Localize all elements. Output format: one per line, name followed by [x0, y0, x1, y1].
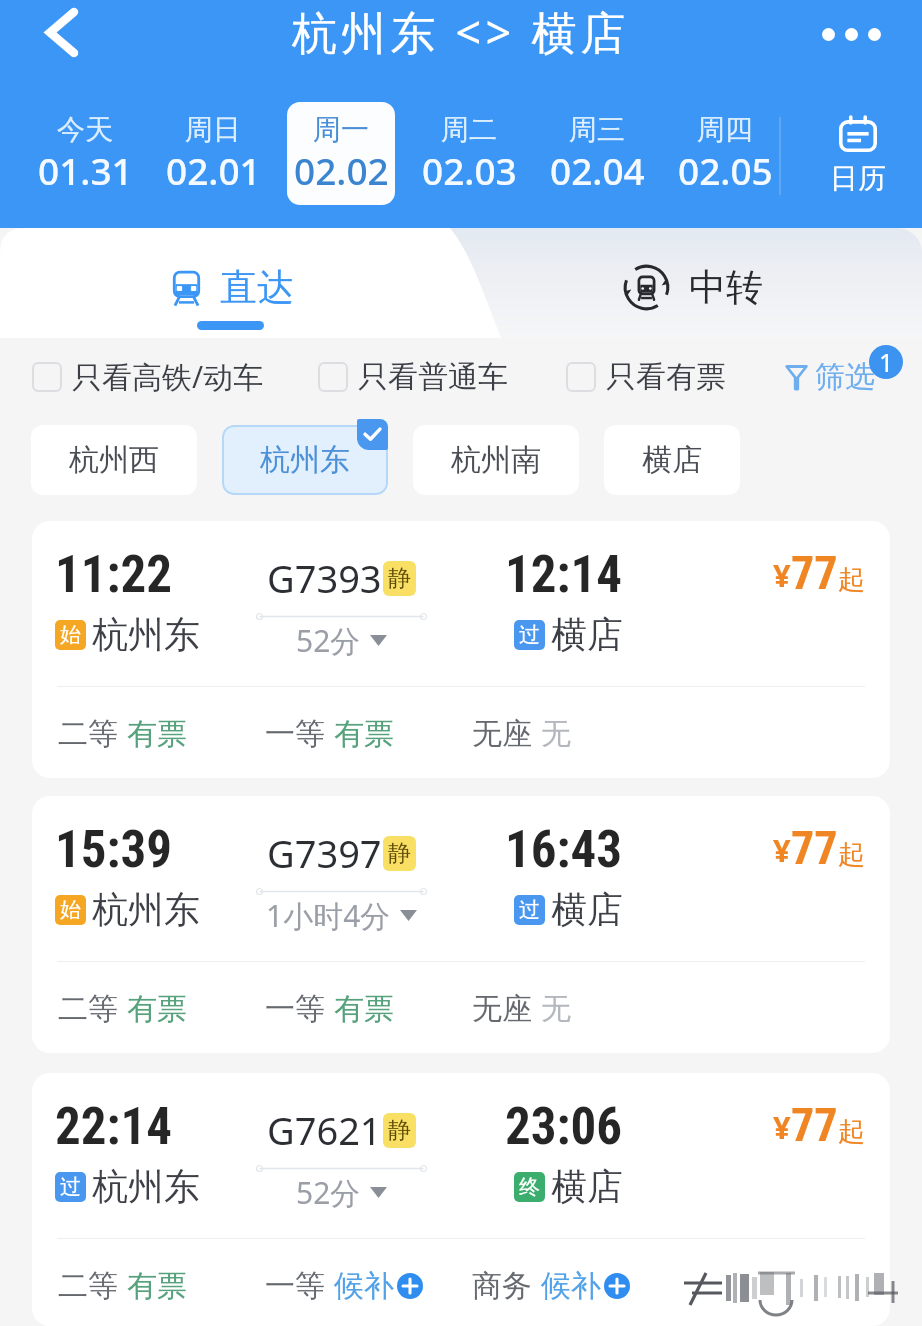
- staticText: 静: [388, 1116, 411, 1145]
- button[interactable]: 一等: [265, 1267, 423, 1305]
- staticText: 01.31: [38, 145, 133, 195]
- button[interactable]: 直达: [0, 228, 461, 338]
- staticText: 周日: [185, 112, 241, 147]
- staticText: ¥: [773, 1106, 791, 1148]
- button[interactable]: 周一: [287, 102, 395, 205]
- staticText: 22:14: [55, 1097, 173, 1157]
- staticText: 静: [388, 564, 411, 593]
- button[interactable]: 只看普通车: [318, 358, 508, 396]
- staticText: 一等: [265, 990, 325, 1028]
- button[interactable]: 中转: [461, 228, 922, 338]
- staticText: 周二: [441, 112, 497, 147]
- staticText: 02.03: [422, 145, 517, 195]
- button[interactable]: 杭州西: [31, 425, 197, 495]
- button[interactable]: 只看高铁/动车: [32, 356, 264, 397]
- staticText: 02.02: [294, 145, 389, 195]
- staticText: 只看高铁/动车: [72, 356, 264, 397]
- staticText: 无座: [472, 715, 532, 753]
- button[interactable]: Calendar: [815, 117, 901, 196]
- staticText: 今天: [57, 112, 113, 147]
- staticText: 筛选: [815, 358, 875, 396]
- staticText: 77: [791, 821, 838, 875]
- staticText: 杭州东 <> 横店: [292, 1, 630, 62]
- button[interactable]: More options: [812, 0, 890, 70]
- staticText: 11:22: [55, 545, 173, 605]
- staticText: 杭州东: [260, 441, 350, 479]
- button[interactable]: 15:39: [32, 796, 890, 1053]
- staticText: 杭州东: [92, 612, 200, 657]
- button[interactable]: 周四: [671, 102, 779, 205]
- staticText: 52分: [296, 1172, 361, 1213]
- staticText: 一等: [265, 1267, 325, 1305]
- button[interactable]: Back: [14, 0, 110, 68]
- staticText: 周四: [697, 112, 753, 147]
- staticText: 二等: [58, 715, 118, 753]
- staticText: 过: [60, 1174, 81, 1200]
- staticText: ¥: [773, 554, 791, 596]
- staticText: 16:43: [505, 820, 623, 880]
- button[interactable]: 筛选: [786, 358, 875, 396]
- staticText: 横店: [551, 887, 623, 932]
- staticText: 静: [388, 839, 411, 868]
- button[interactable]: 11:22: [32, 521, 890, 778]
- staticText: 有票: [127, 990, 187, 1028]
- button[interactable]: 今天: [31, 102, 139, 205]
- staticText: 始: [60, 897, 81, 923]
- staticText: 1: [879, 345, 894, 379]
- staticText: 商务: [472, 1267, 532, 1305]
- staticText: 始: [60, 622, 81, 648]
- staticText: 横店: [551, 612, 623, 657]
- staticText: 77: [791, 1098, 838, 1152]
- staticText: 77: [791, 546, 838, 600]
- staticText: 候补: [541, 1267, 601, 1305]
- staticText: ¥: [773, 829, 791, 871]
- staticText: 横店: [551, 1164, 623, 1209]
- staticText: 日历: [830, 161, 886, 196]
- staticText: 无座: [472, 990, 532, 1028]
- staticText: 中转: [689, 264, 763, 311]
- staticText: 02.01: [166, 145, 261, 195]
- staticText: 52分: [296, 620, 361, 661]
- button[interactable]: 22:14: [32, 1073, 890, 1326]
- staticText: 起: [838, 838, 865, 872]
- button[interactable]: 商务: [472, 1267, 630, 1305]
- staticText: 12:14: [505, 545, 623, 605]
- staticText: 二等: [58, 990, 118, 1028]
- button[interactable]: [0, 228, 922, 338]
- button[interactable]: 周日: [159, 102, 267, 205]
- staticText: 直达: [220, 264, 294, 311]
- staticText: 周一: [313, 112, 369, 147]
- staticText: 候补: [334, 1267, 394, 1305]
- button[interactable]: 杭州东: [222, 425, 388, 495]
- staticText: 杭州东: [92, 1164, 200, 1209]
- staticText: 无: [541, 715, 571, 753]
- staticText: 15:39: [55, 820, 173, 880]
- staticText: 过: [519, 897, 540, 923]
- button[interactable]: 周三: [543, 102, 651, 205]
- staticText: 02.05: [678, 145, 773, 195]
- button[interactable]: 只看有票: [566, 358, 726, 396]
- staticText: G7621: [267, 1104, 382, 1156]
- staticText: 只看普通车: [358, 358, 508, 396]
- staticText: 二等: [58, 1267, 118, 1305]
- button[interactable]: 周二: [415, 102, 523, 205]
- staticText: 周三: [569, 112, 625, 147]
- button[interactable]: 横店: [604, 425, 740, 495]
- staticText: 无: [541, 990, 571, 1028]
- staticText: 起: [838, 563, 865, 597]
- staticText: 杭州西: [69, 441, 159, 479]
- staticText: 有票: [127, 715, 187, 753]
- staticText: 终: [519, 1174, 540, 1200]
- staticText: 杭州东: [92, 887, 200, 932]
- staticText: 有票: [127, 1267, 187, 1305]
- button[interactable]: [0, 228, 922, 338]
- staticText: G7397: [267, 827, 382, 879]
- staticText: G7393: [267, 552, 382, 604]
- staticText: 一等: [265, 715, 325, 753]
- staticText: 杭州南: [451, 441, 541, 479]
- staticText: 1小时4分: [266, 895, 391, 936]
- staticText: 起: [838, 1115, 865, 1149]
- staticText: 有票: [334, 715, 394, 753]
- staticText: 横店: [642, 441, 702, 479]
- button[interactable]: 杭州南: [413, 425, 579, 495]
